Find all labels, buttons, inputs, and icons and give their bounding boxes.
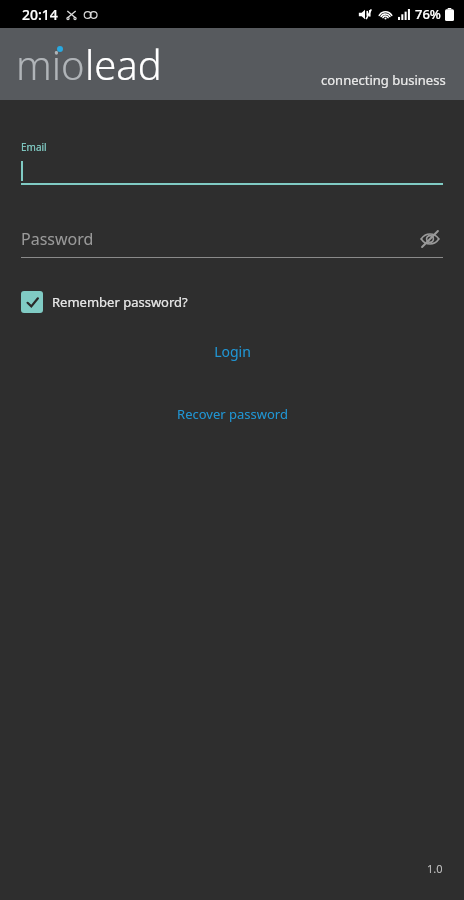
staticText: Password <box>21 228 94 250</box>
staticText: 76% <box>415 5 441 23</box>
staticText: mio <box>16 37 85 91</box>
button[interactable]: Login <box>21 339 443 363</box>
staticText: connecting business <box>321 71 446 89</box>
staticText: 1.0 <box>427 861 443 876</box>
staticText: Remember password? <box>52 293 188 311</box>
button[interactable]: Password <box>21 226 443 258</box>
staticText: lead <box>85 37 162 91</box>
button[interactable]: Show password <box>417 226 443 252</box>
button[interactable]: Remember password? <box>21 291 188 313</box>
staticText: Email <box>21 140 47 154</box>
staticText: Login <box>214 342 251 361</box>
button[interactable]: Email <box>21 140 443 185</box>
staticText: Recover password <box>177 405 288 423</box>
staticText: 20:14 <box>22 5 58 24</box>
button[interactable]: Recover password <box>21 402 443 426</box>
